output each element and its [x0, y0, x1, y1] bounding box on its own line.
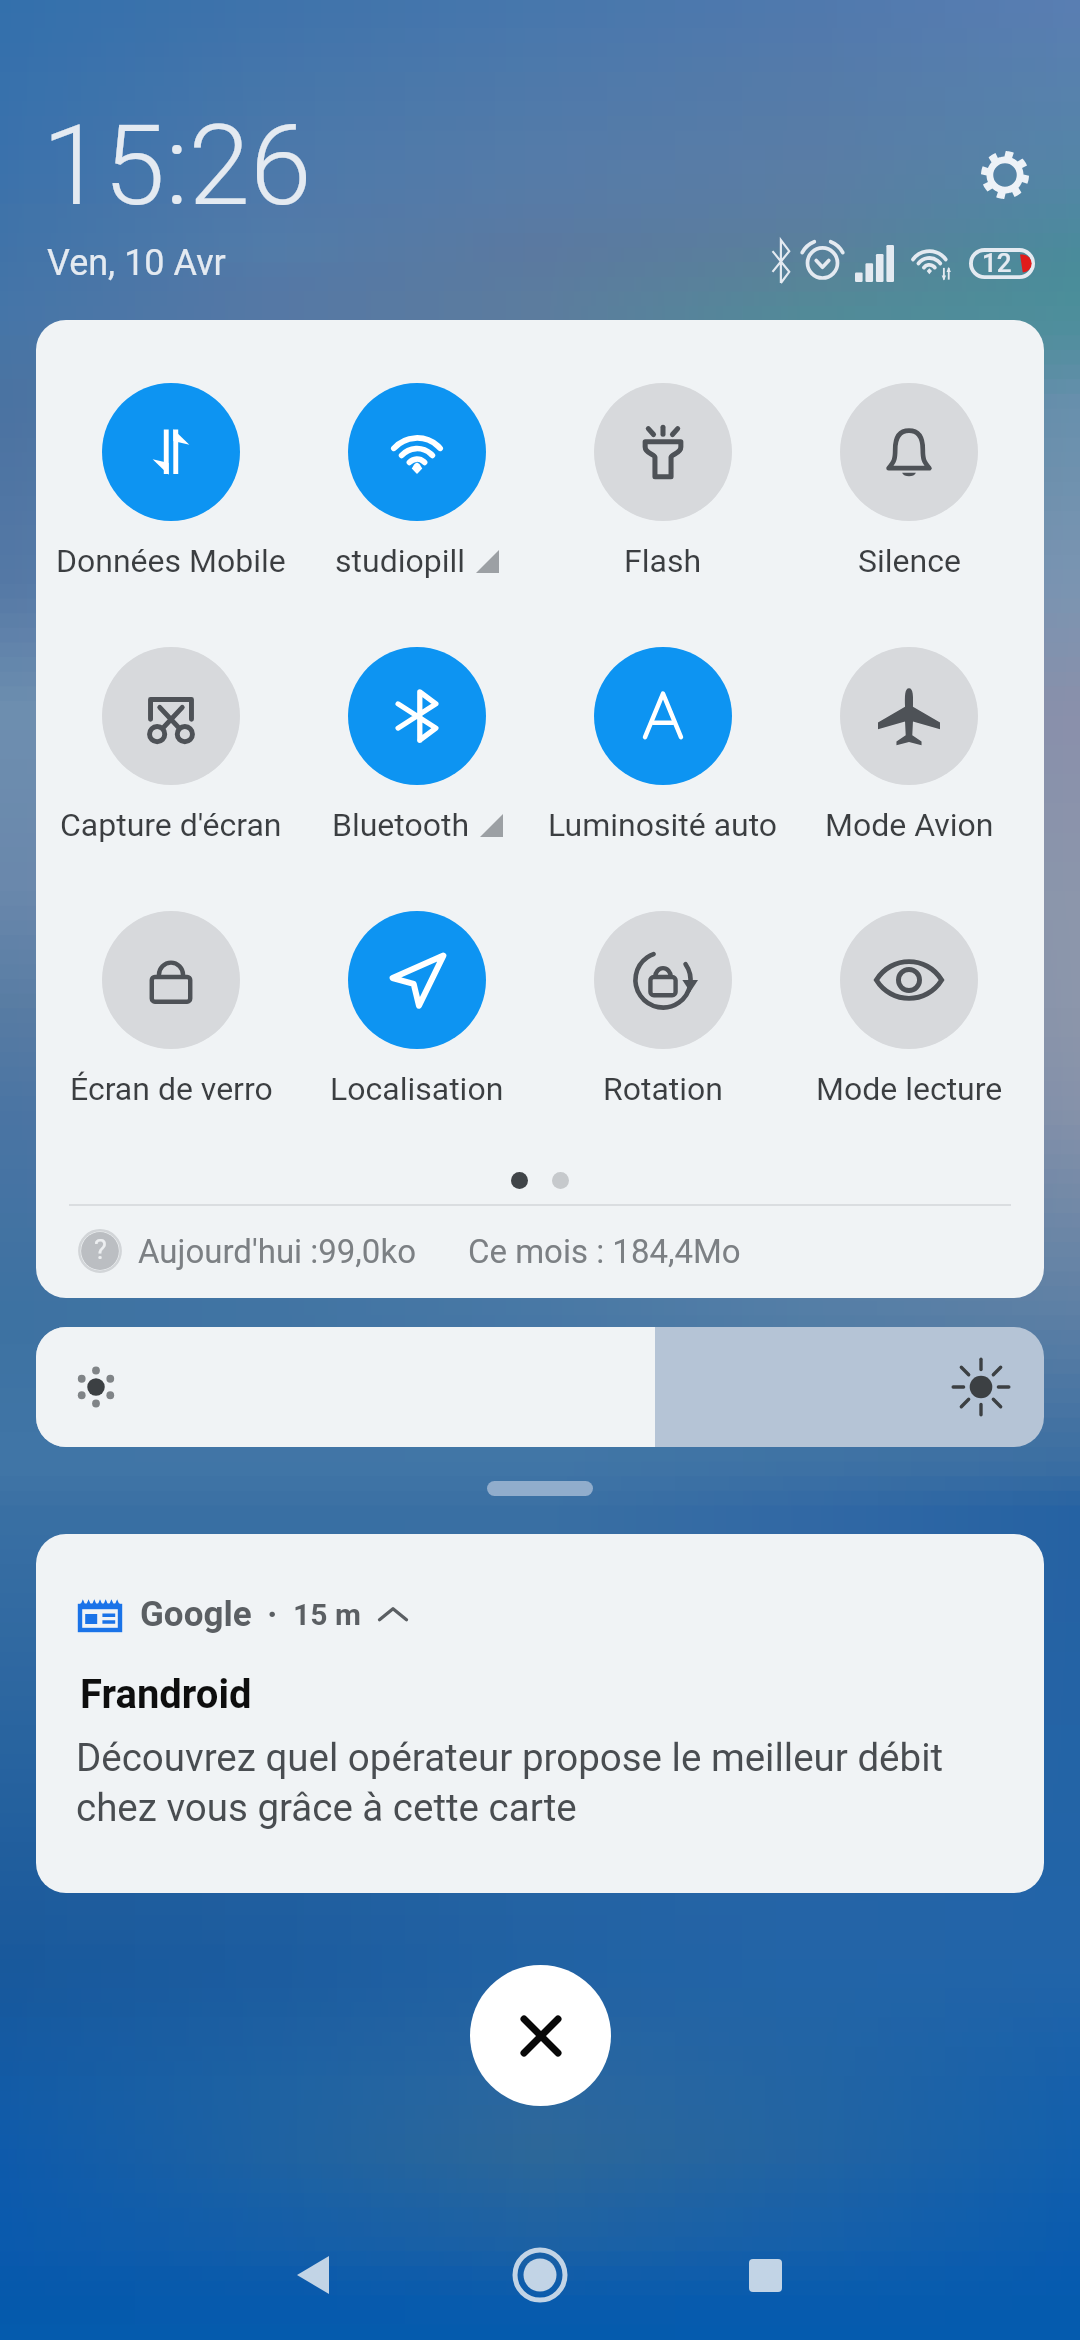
button[interactable]: Mode Avion: [786, 647, 1032, 844]
button[interactable]: Accueil: [427, 2203, 653, 2340]
staticText: 15 m: [293, 1597, 361, 1632]
staticText: Écran de verro: [70, 1070, 273, 1108]
staticText: Découvrez quel opérateur propose le meil…: [76, 1735, 944, 1831]
button[interactable]: Bluetooth: [294, 647, 540, 844]
button[interactable]: Rotation: [540, 911, 786, 1108]
staticText: ·: [267, 1594, 278, 1635]
button[interactable]: Flash: [540, 383, 786, 580]
staticText: Rotation: [603, 1070, 724, 1108]
button[interactable]: Mode lecture: [786, 911, 1032, 1108]
staticText: Ce mois : 184,4Mo: [468, 1232, 741, 1271]
staticText: Localisation: [330, 1070, 504, 1108]
staticText: ?: [94, 1234, 107, 1266]
button[interactable]: Retour: [200, 2203, 426, 2340]
staticText: Aujourd'hui :99,0ko: [138, 1232, 416, 1271]
button[interactable]: Fermer: [470, 1965, 611, 2106]
staticText: 12: [982, 248, 1012, 278]
staticText: Frandroid: [80, 1671, 252, 1718]
button[interactable]: Google: [36, 1534, 1044, 1893]
staticText: 15:26: [42, 101, 312, 231]
button[interactable]: Applications récentes: [652, 2203, 878, 2340]
staticText: Ven, 10 Avr: [47, 242, 226, 284]
staticText: Flash: [624, 542, 702, 580]
staticText: Google: [140, 1594, 252, 1635]
staticText: Données Mobile: [56, 542, 286, 580]
button[interactable]: Silence: [786, 383, 1032, 580]
staticText: Luminosité auto: [548, 806, 778, 844]
button[interactable]: studiopill: [294, 383, 540, 580]
staticText: Silence: [858, 542, 961, 580]
button[interactable]: Données Mobile: [48, 383, 294, 580]
button[interactable]: Luminosité: [36, 1327, 1044, 1447]
staticText: studiopill: [335, 542, 466, 580]
button[interactable]: Capture d'écran: [48, 647, 294, 844]
button[interactable]: Paramètres: [957, 127, 1053, 223]
staticText: Bluetooth: [332, 806, 470, 844]
staticText: Capture d'écran: [60, 806, 282, 844]
button[interactable]: Localisation: [294, 911, 540, 1108]
staticText: Mode lecture: [816, 1070, 1003, 1108]
button[interactable]: Luminosité auto: [540, 647, 786, 844]
button[interactable]: Écran de verro: [48, 911, 294, 1108]
staticText: Mode Avion: [825, 806, 994, 844]
